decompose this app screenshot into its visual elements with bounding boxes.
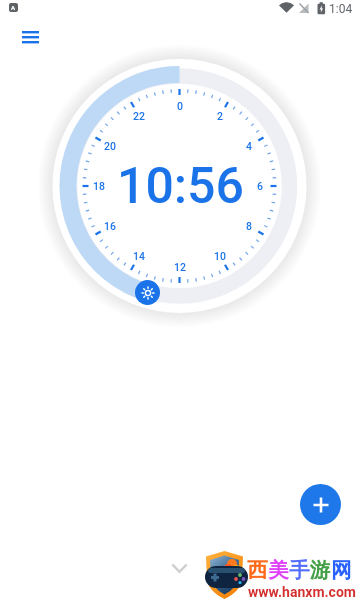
staticText: 美 [268, 557, 289, 583]
staticText: 6 [257, 180, 263, 192]
staticText: 8 [246, 220, 252, 232]
staticText: 16 [104, 220, 116, 232]
staticText: 20 [104, 140, 116, 152]
staticText: 10 [214, 250, 226, 262]
button[interactable] [300, 484, 341, 525]
staticText: 12 [174, 261, 186, 273]
staticText: www.hanxm.com [248, 584, 356, 599]
button[interactable] [135, 280, 160, 305]
staticText: 手 [289, 557, 310, 583]
staticText: 10:56 [117, 157, 244, 216]
staticText: 14 [133, 250, 145, 262]
button[interactable] [166, 558, 192, 578]
staticText: 0 [177, 100, 183, 112]
staticText: 西 [247, 557, 268, 583]
staticText: 4 [246, 140, 252, 152]
staticText: A [11, 4, 16, 11]
button[interactable] [14, 24, 46, 50]
staticText: 18 [93, 180, 105, 192]
staticText: 1:04 [329, 2, 353, 16]
staticText: 游 [310, 557, 331, 583]
staticText: 2 [217, 110, 223, 122]
staticText: 22 [133, 110, 145, 122]
staticText: 网 [331, 557, 352, 583]
